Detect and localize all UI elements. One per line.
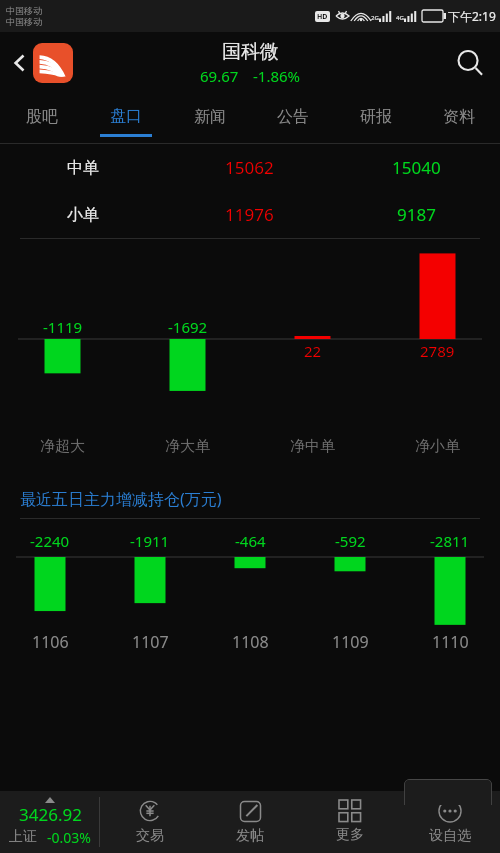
button[interactable]: 股吧	[0, 94, 84, 144]
staticText: 1106	[32, 631, 69, 653]
staticText: -592	[335, 531, 366, 551]
button[interactable]: 新闻	[168, 94, 251, 144]
staticText: 更多	[336, 826, 364, 844]
button[interactable]: 研报	[334, 94, 417, 144]
staticText: -0.03%	[47, 828, 91, 847]
staticText: 股吧	[26, 107, 58, 127]
staticText: 小单	[67, 205, 99, 225]
staticText: 9187	[397, 203, 436, 226]
staticText: 研报	[360, 107, 392, 127]
staticText: 最近五日主力增减持仓(万元)	[20, 488, 222, 510]
button[interactable]: 公告	[251, 94, 334, 144]
staticText: 下午2:19	[448, 8, 496, 24]
staticText: 1109	[332, 631, 369, 653]
staticText: 净中单	[290, 437, 335, 456]
staticText: 2G	[371, 14, 379, 22]
staticText: 上证	[9, 828, 37, 846]
button[interactable]: 更多	[300, 791, 400, 853]
staticText: 3426.92	[19, 803, 82, 826]
button[interactable]: Search	[448, 41, 492, 85]
button[interactable]: 发帖	[200, 791, 300, 853]
staticText: 4G	[396, 14, 404, 22]
staticText: 69.67	[200, 66, 239, 86]
staticText: -1911	[130, 531, 170, 551]
staticText: 15062	[225, 156, 274, 179]
staticText: 2789	[420, 341, 455, 361]
staticText: -1.86%	[253, 66, 301, 86]
staticText: -464	[235, 531, 266, 551]
button[interactable]: 资料	[417, 94, 500, 144]
button[interactable]: App logo	[33, 43, 73, 83]
staticText: 净超大	[40, 437, 85, 456]
staticText: 净小单	[415, 437, 460, 456]
staticText: 发帖	[236, 827, 264, 845]
staticText: 资料	[443, 107, 475, 127]
staticText: 15040	[392, 156, 441, 179]
staticText: -2811	[430, 531, 470, 551]
button[interactable]: 交易	[100, 791, 200, 853]
staticText: 中国移动	[6, 16, 42, 27]
staticText: 交易	[136, 827, 164, 845]
button[interactable]: 设自选	[400, 791, 500, 853]
staticText: -1119	[43, 317, 83, 337]
staticText: 中国移动	[6, 5, 42, 16]
staticText: 1110	[432, 631, 469, 653]
staticText: 设自选	[429, 827, 471, 845]
staticText: -2240	[30, 531, 70, 551]
staticText: HD	[317, 12, 328, 22]
staticText: 22	[304, 341, 322, 361]
staticText: 国科微	[222, 40, 279, 64]
staticText: 1108	[232, 631, 269, 653]
button[interactable]: 盘口	[84, 94, 168, 144]
staticText: 1107	[132, 631, 169, 653]
button[interactable]: 3426.92	[0, 791, 99, 853]
staticText: 公告	[277, 107, 309, 127]
staticText: 盘口	[110, 106, 142, 126]
staticText: 中单	[67, 158, 99, 178]
staticText: 新闻	[194, 107, 226, 127]
staticText: 净大单	[165, 437, 210, 456]
button[interactable]: Back	[0, 43, 40, 83]
staticText: -1692	[168, 317, 208, 337]
staticText: 11976	[225, 203, 274, 226]
